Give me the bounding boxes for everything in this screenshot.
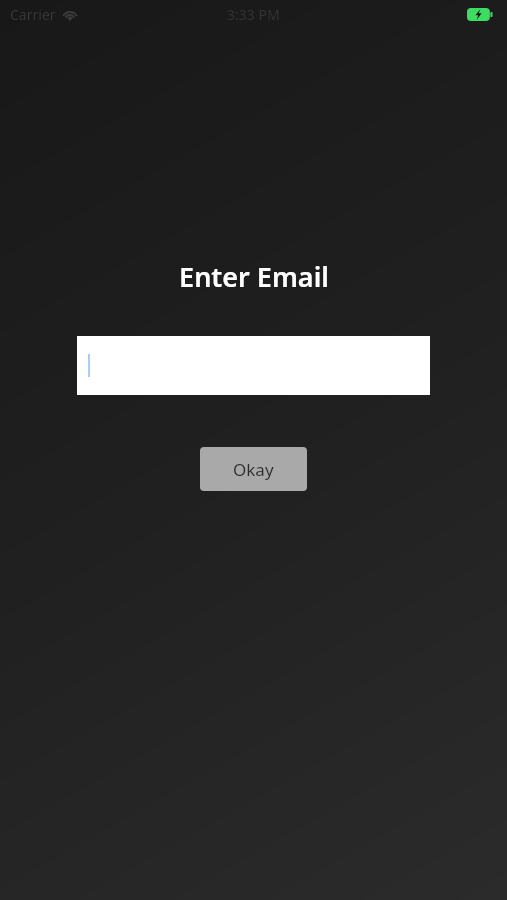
staticText: Okay [233, 458, 274, 481]
staticText: 3:33 PM [227, 5, 280, 24]
button[interactable]: Okay [200, 447, 307, 491]
button[interactable] [77, 336, 430, 395]
staticText: Carrier [10, 5, 56, 24]
staticText: Enter Email [179, 258, 329, 295]
